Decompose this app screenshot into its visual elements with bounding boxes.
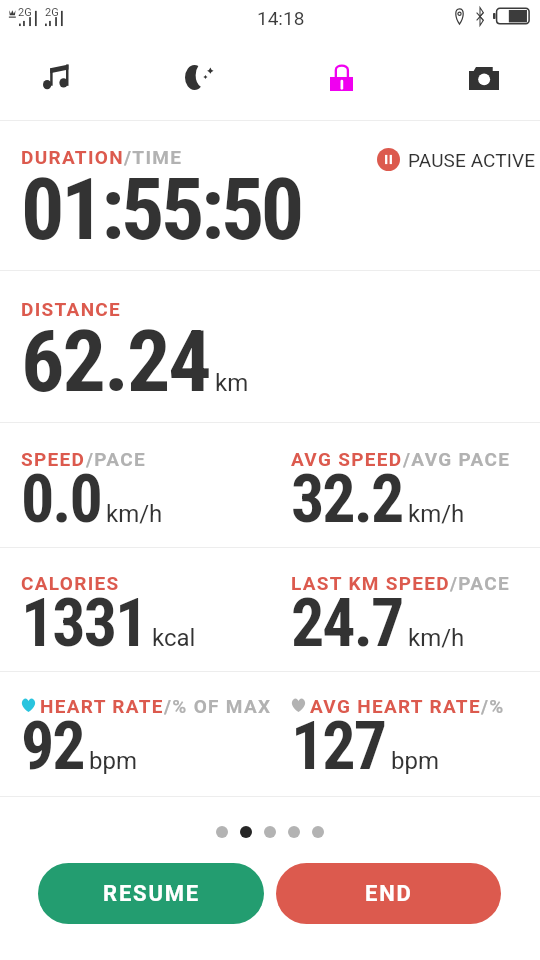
staticText: AVG HEART RATE [310, 695, 481, 717]
staticText: HEART RATE [40, 695, 164, 717]
staticText: km/h [408, 624, 465, 652]
button[interactable]: Lock [313, 36, 369, 120]
staticText: /PACE [450, 572, 510, 594]
staticText: /PACE [86, 448, 146, 470]
staticText: 127 [291, 708, 386, 785]
button[interactable]: Page 4 [288, 826, 300, 838]
button[interactable]: Night mode [171, 36, 227, 120]
staticText: bpm [391, 747, 439, 775]
staticText: PAUSE ACTIVE [408, 149, 536, 171]
staticText: 2G [18, 6, 32, 19]
staticText: DURATION [21, 146, 124, 168]
staticText: 01:55:50 [21, 159, 301, 260]
staticText: /% OF MAX [164, 695, 270, 717]
button[interactable]: END [276, 863, 501, 924]
staticText: DISTANCE [21, 298, 122, 320]
staticText: 32.2 [291, 461, 403, 538]
staticText: km/h [106, 500, 163, 528]
staticText: km/h [408, 500, 465, 528]
staticText: 1331 [21, 585, 147, 662]
staticText: CALORIES [21, 572, 120, 594]
staticText: END [365, 881, 413, 907]
staticText: km [215, 369, 249, 397]
button[interactable]: Page 3 [264, 826, 276, 838]
staticText: LAST KM SPEED [291, 572, 450, 594]
staticText: 92 [21, 708, 84, 785]
staticText: /% [481, 695, 505, 717]
staticText: /AVG PACE [403, 448, 511, 470]
button[interactable]: Page 1 [216, 826, 228, 838]
button[interactable]: RESUME [38, 863, 264, 924]
staticText: kcal [152, 624, 196, 652]
button[interactable]: Page 5 [312, 826, 324, 838]
staticText: RESUME [103, 881, 200, 907]
button[interactable]: Page 2 [240, 826, 252, 838]
staticText: bpm [89, 747, 137, 775]
staticText: 0.0 [21, 461, 101, 538]
staticText: 24.7 [291, 585, 403, 662]
staticText: SPEED [21, 448, 86, 470]
staticText: 2G [45, 6, 59, 19]
staticText: /TIME [124, 146, 183, 168]
staticText: 62.24 [21, 311, 210, 412]
button[interactable]: Camera [456, 36, 512, 120]
staticText: AVG SPEED [291, 448, 403, 470]
staticText: 14:18 [257, 7, 305, 29]
button[interactable]: Music [28, 36, 84, 120]
